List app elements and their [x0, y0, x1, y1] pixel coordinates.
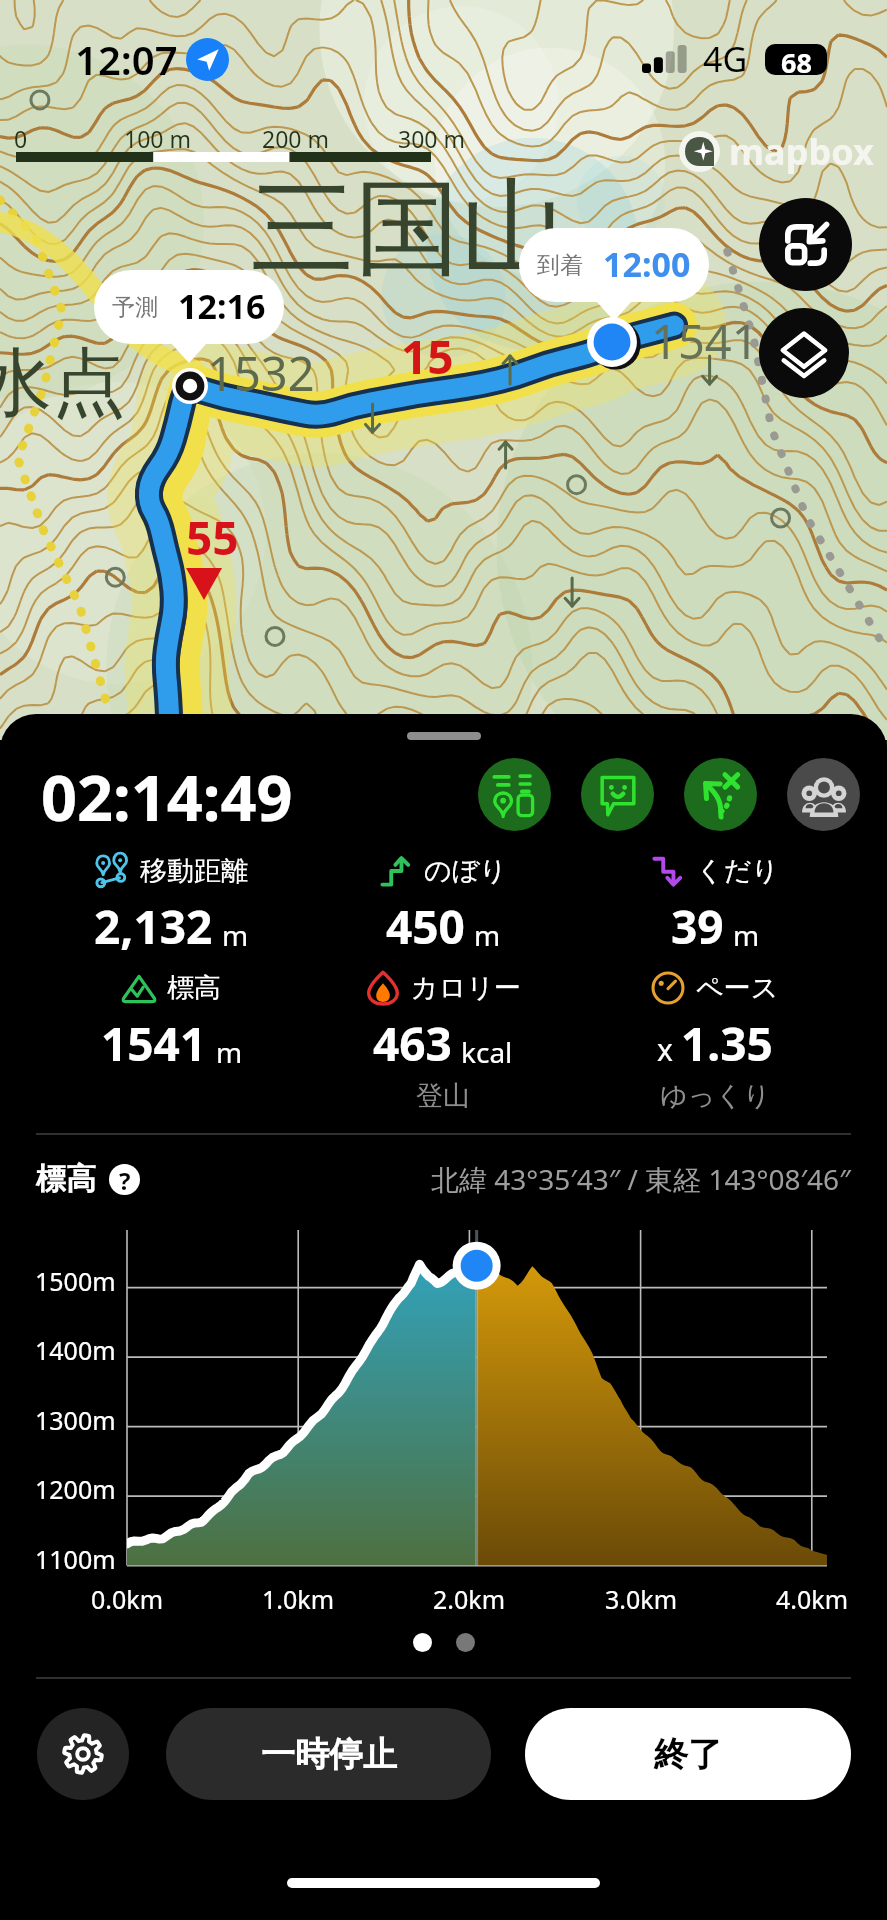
staticText: x: [657, 1029, 673, 1070]
staticText: m: [733, 916, 760, 954]
button[interactable]: Water points: [478, 758, 551, 831]
staticText: ペース: [696, 971, 779, 1005]
staticText: 2.0km: [433, 1582, 506, 1616]
button[interactable]: Route: [684, 758, 757, 831]
staticText: m: [222, 916, 249, 954]
staticText: 移動距離: [140, 854, 248, 888]
staticText: 300 m: [398, 123, 465, 154]
staticText: カロリー: [411, 971, 521, 1005]
staticText: 登山: [416, 1079, 470, 1113]
staticText: 450: [386, 895, 465, 958]
staticText: 水点: [0, 337, 126, 430]
staticText: 北緯 43°35′43″ / 東経 143°08′46″: [431, 1160, 851, 1198]
staticText: 39: [671, 895, 724, 958]
staticText: 一時停止: [261, 1733, 397, 1776]
staticText: 68: [781, 44, 812, 75]
staticText: 15: [401, 325, 454, 388]
staticText: 4G: [703, 36, 748, 82]
button[interactable]: Messages: [581, 758, 654, 831]
staticText: 12:00: [603, 241, 691, 287]
staticText: m: [216, 1033, 243, 1071]
button[interactable]: Members: [787, 758, 860, 831]
button[interactable]: 一時停止: [166, 1708, 491, 1800]
staticText: 02:14:49: [41, 754, 293, 840]
button[interactable]: Help: [109, 1164, 140, 1195]
staticText: のぼり: [424, 854, 507, 888]
staticText: 2,132: [94, 895, 213, 958]
staticText: 終了: [654, 1733, 722, 1776]
staticText: 4.0km: [776, 1582, 849, 1616]
staticText: ?: [119, 1164, 131, 1195]
staticText: くだり: [696, 854, 779, 888]
staticText: 0: [14, 123, 28, 154]
staticText: 1532: [207, 341, 315, 405]
staticText: 1500m: [35, 1264, 116, 1298]
staticText: 三国山: [250, 163, 565, 295]
staticText: 463: [373, 1012, 452, 1075]
staticText: 到着: [537, 251, 583, 280]
staticText: ゆっくり: [660, 1079, 771, 1113]
staticText: 12:16: [178, 283, 266, 329]
staticText: 1300m: [35, 1403, 116, 1437]
button[interactable]: Settings: [37, 1708, 129, 1800]
staticText: 55: [186, 506, 239, 569]
staticText: 200 m: [262, 123, 329, 154]
staticText: 0.0km: [91, 1582, 164, 1616]
button[interactable]: Expand map: [759, 198, 852, 291]
staticText: 1400m: [35, 1333, 116, 1367]
staticText: 1541: [101, 1012, 207, 1075]
staticText: 標高: [167, 971, 221, 1005]
staticText: 1.35: [681, 1012, 773, 1075]
staticText: 1100m: [35, 1542, 116, 1576]
staticText: 1200m: [35, 1472, 116, 1506]
staticText: 1541: [651, 309, 759, 373]
staticText: 100 m: [124, 123, 191, 154]
staticText: 12:07: [75, 32, 178, 86]
button[interactable]: 終了: [525, 1708, 851, 1800]
staticText: mapbox: [729, 127, 874, 176]
staticText: 標高: [36, 1160, 96, 1198]
staticText: kcal: [461, 1033, 513, 1071]
button[interactable]: Map layers: [759, 308, 849, 398]
staticText: 予測: [112, 293, 158, 322]
staticText: m: [474, 916, 501, 954]
staticText: 3.0km: [605, 1582, 678, 1616]
staticText: 1.0km: [262, 1582, 335, 1616]
